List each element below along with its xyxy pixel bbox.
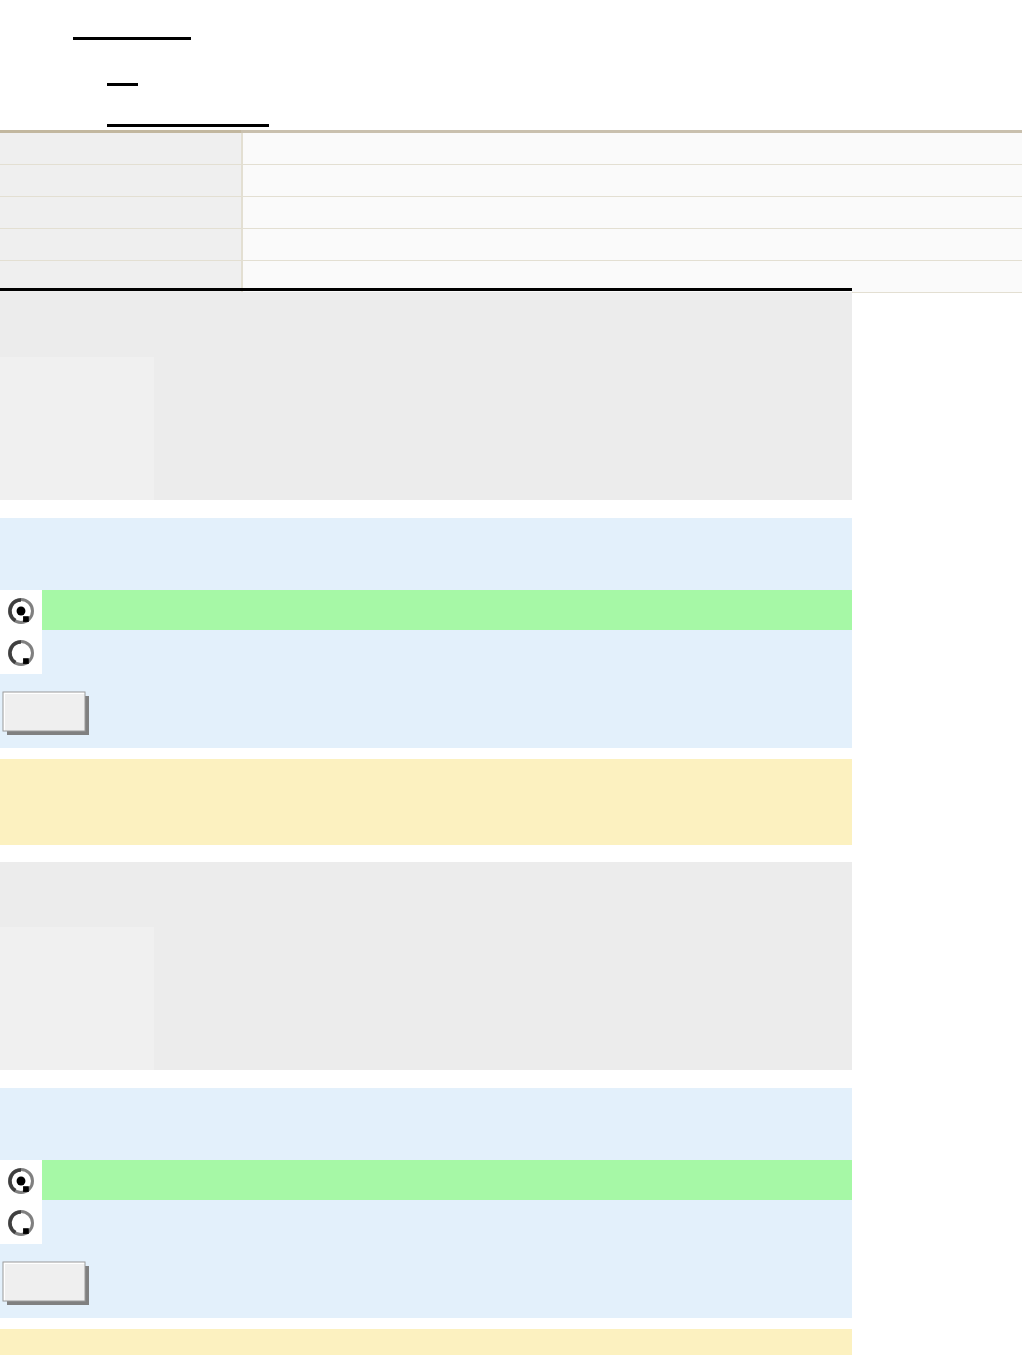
button[interactable]: Option two: [0, 632, 42, 674]
button[interactable]: [0, 133, 1022, 165]
button[interactable]: Option one, selected: [0, 1160, 42, 1202]
button[interactable]: Option two: [0, 1202, 42, 1244]
button[interactable]: Submit: [3, 1262, 89, 1305]
button[interactable]: [0, 229, 1022, 261]
button[interactable]: Submit: [3, 692, 89, 735]
button[interactable]: [0, 197, 1022, 229]
button[interactable]: [0, 165, 1022, 197]
button[interactable]: Option one, selected: [0, 590, 42, 632]
button[interactable]: [0, 261, 1022, 293]
